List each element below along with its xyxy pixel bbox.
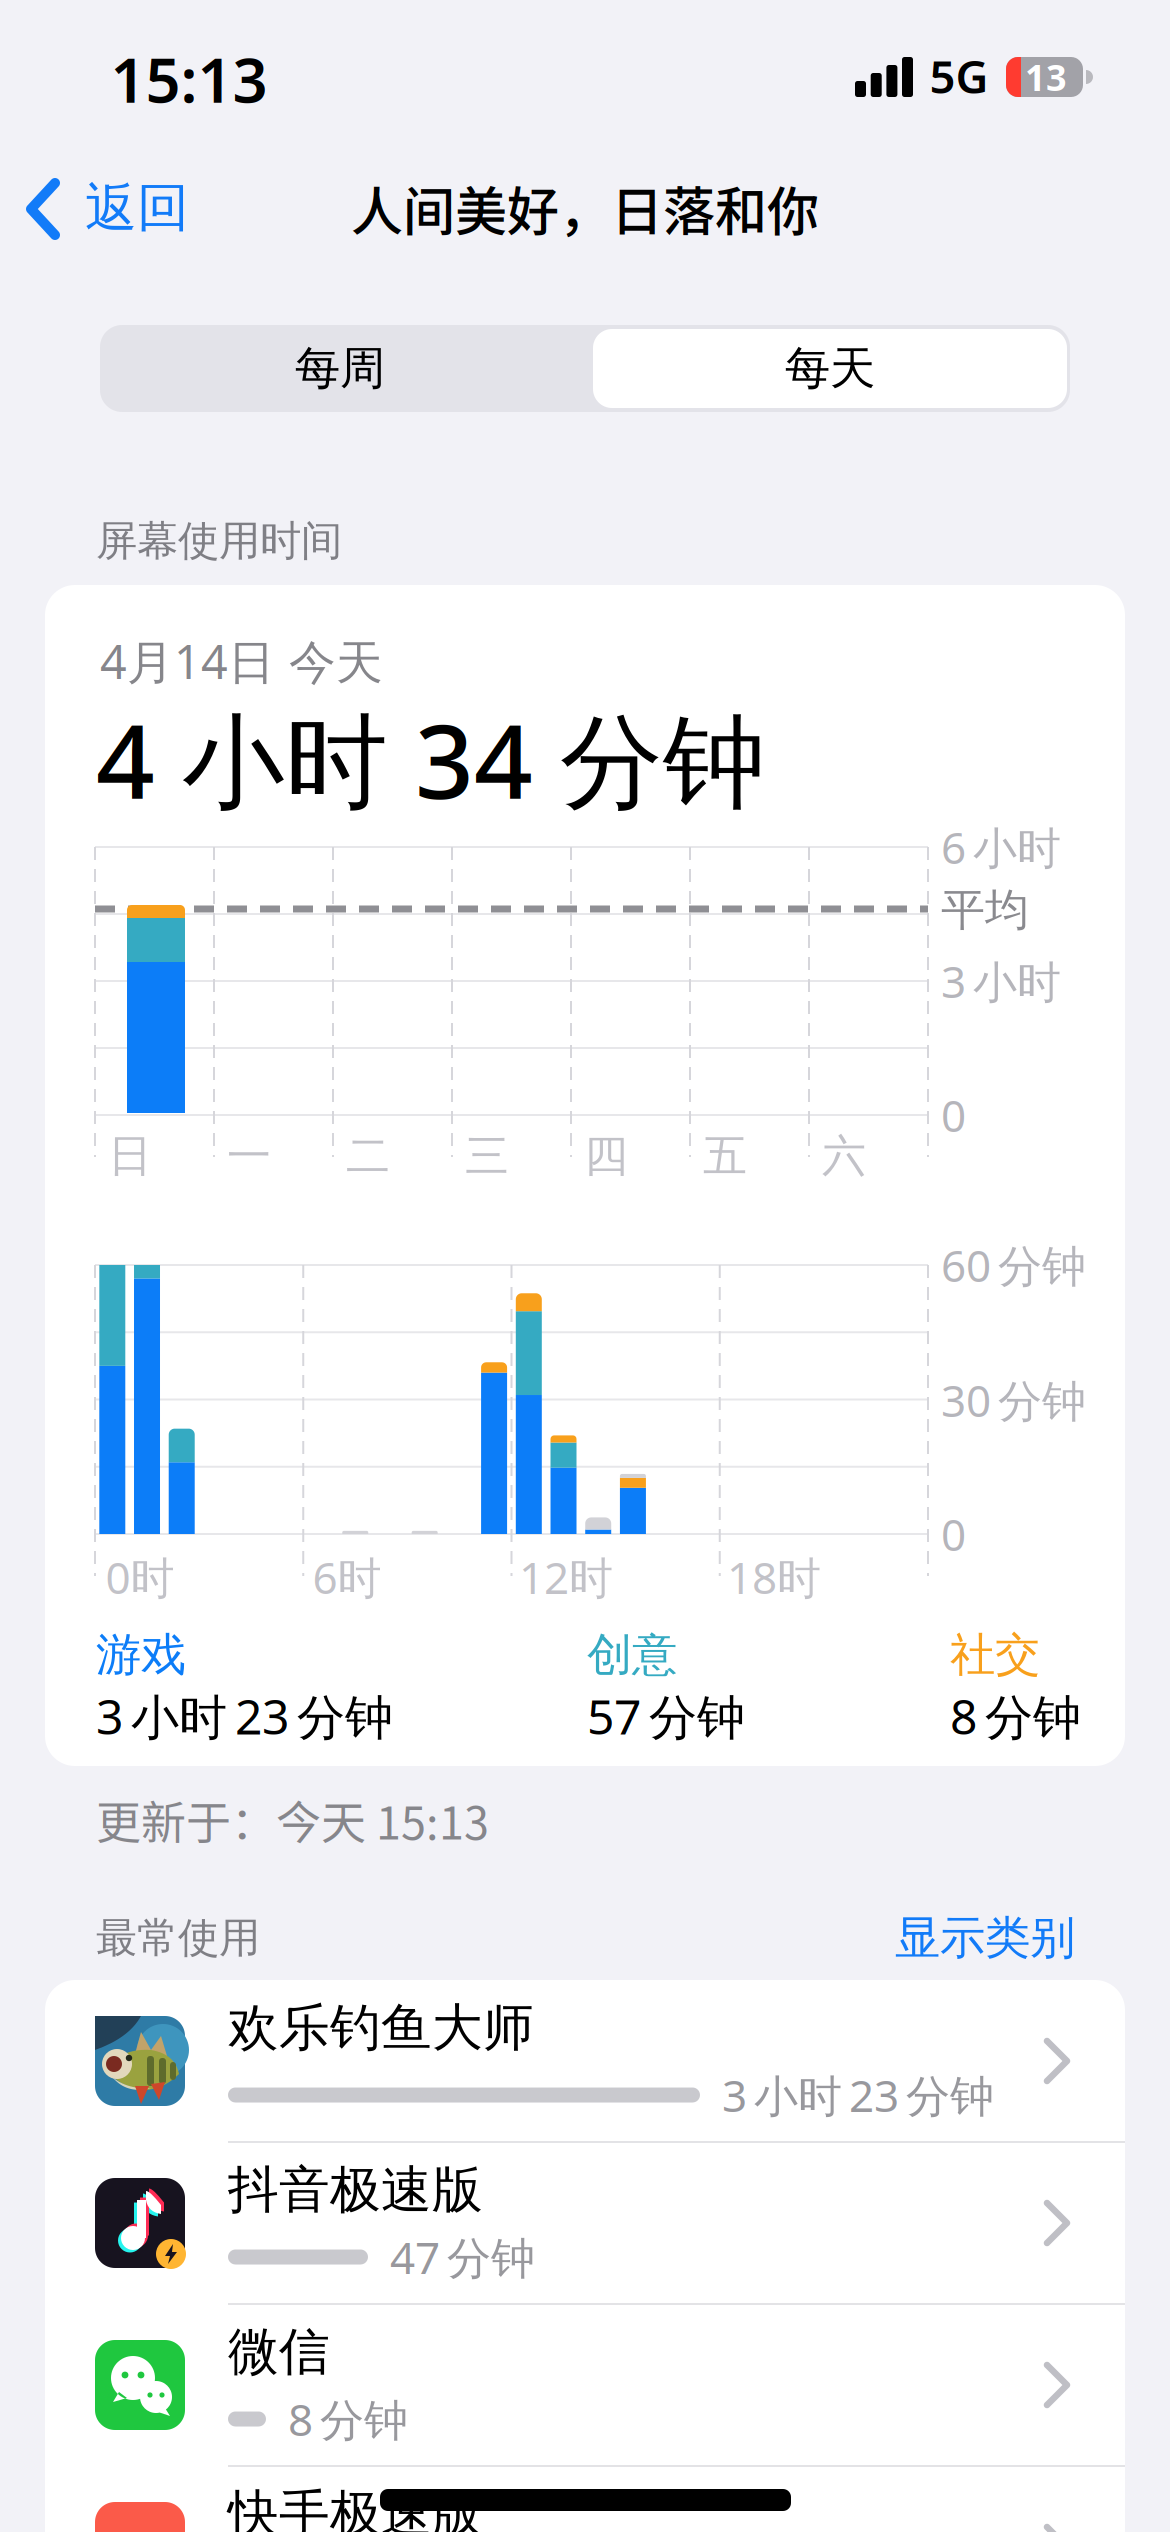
staticText: 0	[941, 1086, 966, 1144]
staticText: 欢乐钓鱼大师	[228, 1997, 534, 2059]
staticText: 六	[822, 1129, 866, 1183]
staticText: 15:13	[110, 38, 267, 120]
staticText: 18时	[727, 1548, 821, 1606]
staticText: 8 分钟	[950, 1684, 1081, 1748]
staticText: 12时	[519, 1548, 613, 1606]
button[interactable]: 返回	[0, 159, 230, 259]
button[interactable]: 显示类别	[855, 1908, 1115, 1968]
staticText: 三	[465, 1129, 509, 1183]
staticText: 屏幕使用时间	[96, 516, 342, 566]
staticText: 五	[703, 1129, 747, 1183]
staticText: 微信	[228, 2321, 330, 2383]
staticText: 抖音极速版	[228, 2159, 483, 2221]
staticText: 47 分钟	[390, 2228, 535, 2286]
staticText: 0时	[105, 1548, 174, 1606]
staticText: 60 分钟	[941, 1236, 1086, 1294]
staticText: 每天	[785, 341, 875, 396]
staticText: 6 小时	[941, 818, 1061, 876]
staticText: 快手极速版	[228, 2483, 483, 2532]
staticText: 平均	[941, 883, 1029, 937]
staticText: 3 小时 23 分钟	[96, 1684, 393, 1748]
button[interactable]: 每天	[590, 325, 1070, 412]
staticText: 6时	[312, 1548, 381, 1606]
staticText: 一	[227, 1129, 271, 1183]
staticText: 日	[108, 1129, 152, 1183]
staticText: 二	[346, 1129, 390, 1183]
staticText: 3 小时	[941, 952, 1061, 1010]
staticText: 30 分钟	[941, 1371, 1086, 1429]
staticText: 8 分钟	[288, 2390, 408, 2448]
button[interactable]: 欢乐钓鱼大师	[45, 1980, 1125, 2142]
staticText: 4月14日 今天	[100, 630, 383, 692]
button[interactable]: 快手极速版	[45, 2466, 1125, 2532]
staticText: 更新于：今天 15:13	[96, 1787, 489, 1853]
staticText: 人间美好，日落和你	[351, 170, 819, 246]
staticText: 4 小时 34 分钟	[96, 691, 766, 827]
staticText: 3 小时 23 分钟	[722, 2066, 994, 2124]
staticText: 四	[584, 1129, 628, 1183]
staticText: 游戏	[96, 1627, 186, 1683]
staticText: 返回	[85, 176, 189, 240]
staticText: 创意	[587, 1627, 677, 1683]
button[interactable]: 每周	[100, 325, 580, 412]
staticText: 最常使用	[96, 1913, 260, 1963]
staticText: 13	[1025, 53, 1067, 101]
staticText: 57 分钟	[587, 1684, 745, 1748]
button[interactable]: 抖音极速版	[45, 2142, 1125, 2304]
staticText: 社交	[950, 1627, 1040, 1683]
button[interactable]: 微信	[45, 2304, 1125, 2466]
staticText: 5G	[929, 46, 988, 106]
staticText: 显示类别	[895, 1910, 1075, 1966]
staticText: 0	[941, 1505, 966, 1563]
staticText: 每周	[295, 341, 385, 396]
